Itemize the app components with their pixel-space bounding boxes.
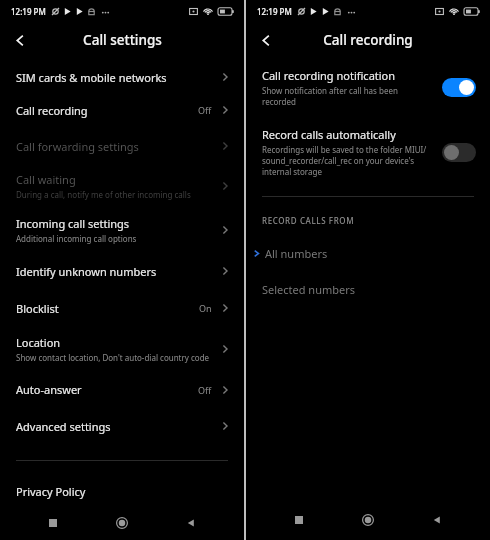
- staticText: Call waiting: [16, 172, 76, 187]
- staticText: Call forwarding settings: [16, 139, 139, 154]
- button[interactable]: Location: [0, 326, 244, 371]
- staticText: 12:19 PM: [257, 6, 292, 17]
- staticText: SIM cards & mobile networks: [16, 70, 167, 85]
- button[interactable]: Recents: [283, 504, 315, 536]
- button[interactable]: Privacy Policy: [0, 477, 244, 505]
- button[interactable]: Blocklist: [0, 290, 244, 326]
- button[interactable]: Call recording: [0, 92, 244, 128]
- staticText: Selected numbers: [262, 282, 356, 297]
- staticText: Additional incoming call options: [16, 233, 137, 244]
- staticText: Recordings will be saved to the folder M…: [262, 144, 427, 177]
- staticText: Call recording: [323, 31, 413, 49]
- button[interactable]: Call waiting: [0, 164, 244, 208]
- staticText: Call recording: [16, 103, 88, 118]
- staticText: 12:19 PM: [11, 6, 46, 17]
- staticText: Show notification after call has been re…: [262, 85, 398, 107]
- staticText: Call settings: [83, 31, 162, 49]
- button[interactable]: On: [442, 78, 476, 97]
- button[interactable]: Off: [442, 143, 476, 162]
- button[interactable]: Home: [106, 507, 138, 539]
- button[interactable]: Recents: [37, 507, 69, 539]
- staticText: Identify unknown numbers: [16, 264, 157, 279]
- staticText: RECORD CALLS FROM: [262, 215, 355, 226]
- button[interactable]: Advanced settings: [0, 408, 244, 444]
- staticText: Privacy Policy: [16, 484, 86, 499]
- button[interactable]: Auto-answer: [0, 371, 244, 408]
- staticText: Record calls automatically: [262, 127, 396, 142]
- button[interactable]: Incoming call settings: [0, 208, 244, 252]
- button[interactable]: Back: [253, 27, 279, 53]
- staticText: Auto-answer: [16, 382, 82, 397]
- staticText: All numbers: [265, 246, 328, 261]
- button[interactable]: Call recording notification: [246, 68, 490, 107]
- staticText: Advanced settings: [16, 419, 111, 434]
- button[interactable]: Selected numbers: [246, 277, 490, 301]
- staticText: Call recording notification: [262, 68, 396, 83]
- button[interactable]: All numbers: [246, 241, 490, 265]
- staticText: Blocklist: [16, 301, 59, 316]
- button[interactable]: Home: [352, 504, 384, 536]
- staticText: Off: [198, 384, 212, 396]
- button[interactable]: Back: [175, 507, 207, 539]
- button[interactable]: Record calls automatically: [246, 127, 490, 177]
- button[interactable]: Back: [421, 504, 453, 536]
- staticText: Location: [16, 335, 61, 350]
- button[interactable]: SIM cards & mobile networks: [0, 62, 244, 92]
- staticText: During a call, notify me of other incomi…: [16, 189, 191, 200]
- button[interactable]: Call forwarding settings: [0, 128, 244, 164]
- button[interactable]: Identify unknown numbers: [0, 252, 244, 290]
- staticText: Incoming call settings: [16, 216, 130, 231]
- staticText: Off: [198, 104, 212, 116]
- button[interactable]: Back: [7, 27, 33, 53]
- staticText: On: [199, 302, 212, 314]
- staticText: Show contact location, Don't auto-dial c…: [16, 352, 210, 363]
